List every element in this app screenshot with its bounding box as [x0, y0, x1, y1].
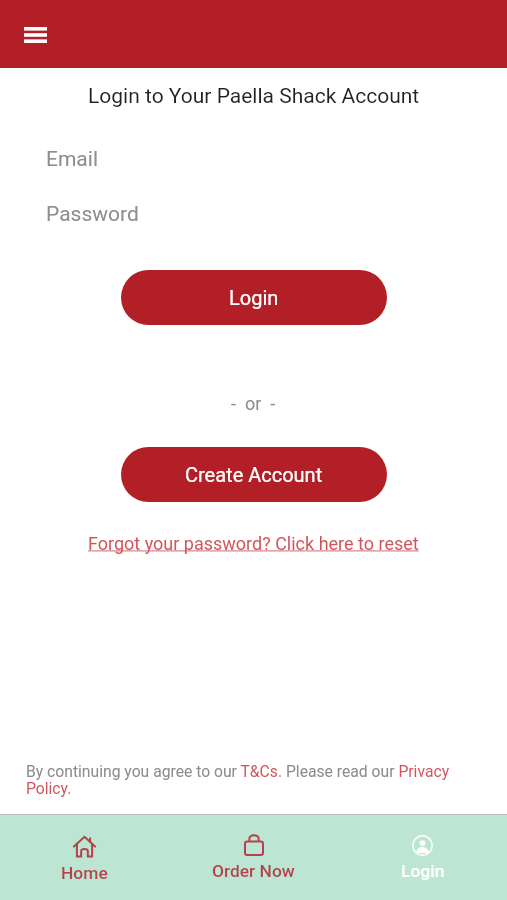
staticText: Order Now	[212, 861, 295, 881]
staticText: Email	[46, 147, 98, 172]
button[interactable]: Menu	[11, 11, 59, 59]
staticText: By continuing you agree to our T&Cs. Ple…	[26, 762, 469, 798]
button[interactable]: Password	[0, 192, 507, 236]
staticText: Login	[401, 861, 445, 881]
staticText: Login to Your Paella Shack Account	[88, 84, 420, 109]
staticText: Home	[61, 863, 108, 883]
staticText: Login	[229, 286, 279, 309]
button[interactable]: Home	[0, 814, 169, 900]
button[interactable]: Login	[121, 270, 387, 325]
button[interactable]: Email	[0, 137, 507, 181]
button[interactable]: Create Account	[121, 447, 387, 502]
staticText: Forgot your password? Click here to rese…	[88, 533, 419, 554]
button[interactable]: Order Now	[169, 814, 338, 900]
staticText: Password	[46, 202, 139, 227]
button[interactable]: Login	[338, 814, 507, 900]
button[interactable]: Forgot your password? Click here to rese…	[88, 533, 419, 554]
staticText: - or -	[231, 393, 276, 414]
staticText: Create Account	[185, 463, 323, 486]
